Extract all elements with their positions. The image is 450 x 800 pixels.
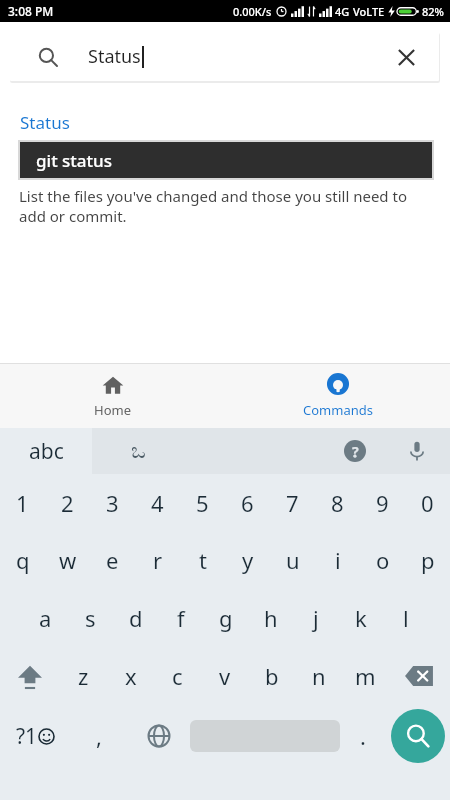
staticText: s [85, 603, 96, 633]
staticText: b [265, 661, 279, 691]
staticText: a [39, 603, 52, 633]
button[interactable]: Search [386, 705, 450, 767]
button[interactable]: v [201, 647, 248, 705]
button[interactable]: abc [0, 428, 92, 474]
staticText: f [177, 603, 185, 633]
staticText: 8 [331, 488, 344, 518]
button[interactable]: 9 [360, 474, 405, 531]
button[interactable]: z [60, 647, 107, 705]
button[interactable]: 7 [270, 474, 315, 531]
button[interactable]: s [68, 589, 113, 647]
staticText: 3 [106, 488, 119, 518]
staticText: j [313, 603, 319, 633]
button[interactable]: l [383, 589, 428, 647]
staticText: 1 [16, 488, 29, 518]
button[interactable]: Help [338, 434, 372, 468]
button[interactable]: . [340, 705, 386, 767]
button[interactable]: m [342, 647, 389, 705]
button[interactable]: j [293, 589, 338, 647]
staticText: w [59, 545, 77, 575]
button[interactable]: Change language [128, 705, 190, 767]
staticText: 3:08 PM [8, 3, 54, 19]
button[interactable]: git status [20, 142, 432, 178]
staticText: 7 [286, 488, 299, 518]
button[interactable]: t [180, 531, 225, 589]
button[interactable]: Voice input [400, 434, 434, 468]
staticText: . [360, 721, 366, 751]
button[interactable]: e [90, 531, 135, 589]
staticText: u [286, 545, 300, 575]
staticText: i [335, 545, 341, 575]
button[interactable]: b [248, 647, 295, 705]
staticText: n [312, 661, 326, 691]
button[interactable]: n [295, 647, 342, 705]
button[interactable]: h [248, 589, 293, 647]
button[interactable]: 3 [90, 474, 135, 531]
staticText: git status [36, 149, 112, 172]
button[interactable]: Clear [391, 42, 421, 72]
button[interactable]: 8 [315, 474, 360, 531]
staticText: c [172, 661, 183, 691]
button[interactable]: a [22, 589, 68, 647]
staticText: t [199, 545, 207, 575]
staticText: 0.00K/s [233, 4, 272, 19]
button[interactable]: i [315, 531, 360, 589]
staticText: Status [88, 44, 141, 69]
button[interactable]: r [135, 531, 180, 589]
button[interactable]: Search [10, 32, 439, 81]
staticText: o [376, 545, 390, 575]
button[interactable]: q [0, 531, 45, 589]
staticText: abc [29, 437, 64, 466]
button[interactable]: 2 [45, 474, 90, 531]
button[interactable]: 4 [135, 474, 180, 531]
button[interactable]: , [70, 705, 128, 767]
staticText: 4G [335, 4, 350, 19]
button[interactable]: c [154, 647, 201, 705]
staticText: z [78, 661, 89, 691]
button[interactable]: k [338, 589, 383, 647]
staticText: r [153, 545, 163, 575]
staticText: Home [94, 401, 131, 419]
staticText: ?1 [16, 722, 38, 751]
staticText: m [355, 661, 376, 691]
staticText: ಒ [131, 440, 146, 462]
staticText: k [355, 603, 367, 633]
button[interactable]: p [405, 531, 450, 589]
button[interactable]: f [158, 589, 203, 647]
staticText: VoLTE [353, 4, 385, 19]
button[interactable]: 1 [0, 474, 45, 531]
staticText: ? [352, 442, 359, 461]
staticText: l [403, 603, 409, 633]
button[interactable]: 5 [180, 474, 225, 531]
staticText: 82% [422, 4, 444, 19]
button[interactable]: u [270, 531, 315, 589]
staticText: h [264, 603, 278, 633]
button[interactable]: ?1 [0, 705, 70, 767]
button[interactable]: w [45, 531, 90, 589]
button[interactable]: ಒ [118, 431, 158, 471]
staticText: 6 [241, 488, 254, 518]
staticText: x [125, 661, 137, 691]
button[interactable]: x [107, 647, 154, 705]
staticText: , [96, 721, 102, 751]
button[interactable]: Commands [225, 364, 450, 428]
staticText: y [242, 545, 254, 575]
button[interactable]: Backspace [389, 647, 450, 705]
button[interactable] [190, 705, 340, 767]
button[interactable]: o [360, 531, 405, 589]
staticText: 9 [376, 488, 389, 518]
button[interactable]: g [203, 589, 248, 647]
button[interactable]: 0 [405, 474, 450, 531]
button[interactable]: Shift [0, 647, 60, 705]
staticText: q [16, 545, 30, 575]
button[interactable]: y [225, 531, 270, 589]
button[interactable]: Home [0, 364, 225, 428]
staticText: 0 [421, 488, 434, 518]
staticText: 5 [196, 488, 209, 518]
button[interactable]: 6 [225, 474, 270, 531]
button[interactable]: d [113, 589, 158, 647]
staticText: List the files you've changed and those … [19, 186, 433, 226]
other: Search [38, 47, 58, 67]
staticText: d [129, 603, 143, 633]
staticText: p [421, 545, 435, 575]
